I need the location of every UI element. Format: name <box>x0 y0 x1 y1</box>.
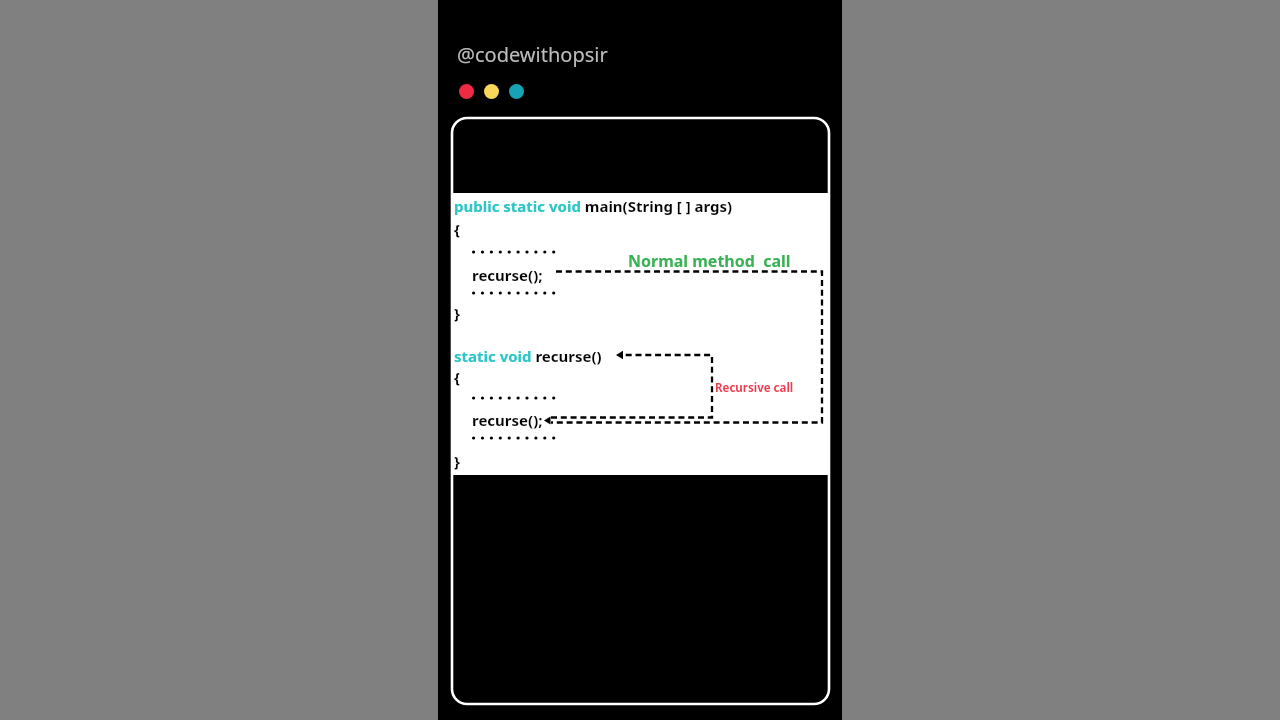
staticText: @codewithopsir <box>457 41 608 68</box>
staticText: public static void main(String [ ] args) <box>454 196 733 216</box>
button[interactable]: @codewithopsir <box>457 41 608 68</box>
button[interactable]: Maximize window <box>509 84 524 99</box>
staticText: Recursive call <box>715 380 794 396</box>
button[interactable]: Close window <box>459 84 474 99</box>
staticText: { <box>454 367 460 387</box>
staticText: } <box>454 451 460 471</box>
staticText: { <box>454 219 460 239</box>
staticText: recurse(); <box>472 265 543 285</box>
staticText: static void recurse() <box>454 346 602 366</box>
button[interactable]: Minimize window <box>484 84 499 99</box>
staticText: recurse(); <box>472 410 543 430</box>
staticText: } <box>454 303 460 323</box>
staticText: Normal method call <box>628 250 791 272</box>
